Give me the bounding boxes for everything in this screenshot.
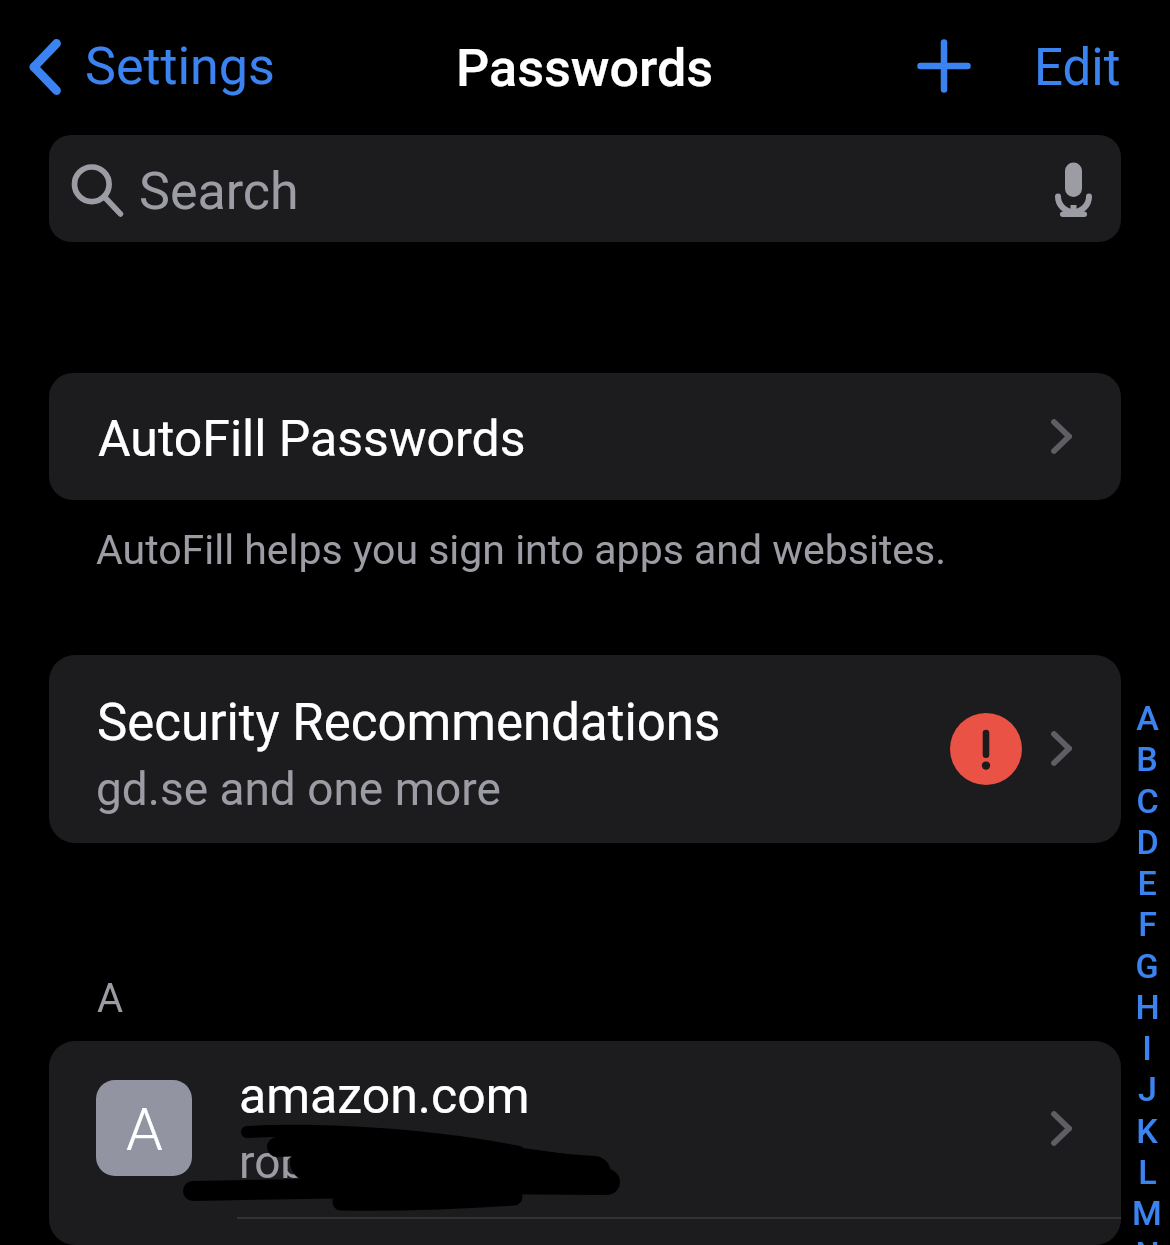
- button[interactable]: A: [49, 1041, 1121, 1245]
- button[interactable]: Add password: [904, 26, 984, 106]
- button[interactable]: Search: [49, 135, 1121, 242]
- staticText: D: [1136, 822, 1159, 854]
- staticText: M: [1132, 1193, 1162, 1225]
- staticText: A: [1136, 698, 1159, 730]
- staticText: Security Recommendations: [97, 693, 721, 753]
- staticText: A: [126, 1095, 163, 1164]
- staticText: I: [1142, 1028, 1152, 1060]
- staticText: gd.se and one more: [96, 762, 501, 816]
- button[interactable]: AutoFill Passwords: [49, 373, 1121, 500]
- staticText: C: [1136, 781, 1159, 813]
- staticText: G: [1135, 946, 1159, 978]
- staticText: F: [1138, 904, 1157, 936]
- staticText: Settings: [85, 36, 275, 97]
- button[interactable]: Edit: [1024, 30, 1131, 106]
- staticText: Edit: [1034, 38, 1121, 98]
- staticText: N: [1135, 1234, 1160, 1245]
- button[interactable]: Security Recommendations: [49, 655, 1121, 843]
- staticText: AutoFill helps you sign into apps and we…: [96, 526, 947, 574]
- staticText: A: [97, 975, 124, 1022]
- staticText: robert: [239, 1135, 363, 1189]
- staticText: B: [1136, 739, 1158, 771]
- staticText: Search: [139, 161, 299, 222]
- staticText: amazon.com: [239, 1067, 530, 1126]
- staticText: K: [1136, 1111, 1158, 1143]
- staticText: L: [1138, 1152, 1157, 1184]
- staticText: J: [1138, 1069, 1157, 1101]
- staticText: Passwords: [456, 38, 714, 99]
- staticText: H: [1135, 987, 1160, 1019]
- button[interactable]: Alphabet index: [1124, 690, 1170, 1245]
- staticText: E: [1137, 863, 1157, 895]
- staticText: AutoFill Passwords: [98, 410, 526, 469]
- button[interactable]: Settings: [19, 28, 285, 105]
